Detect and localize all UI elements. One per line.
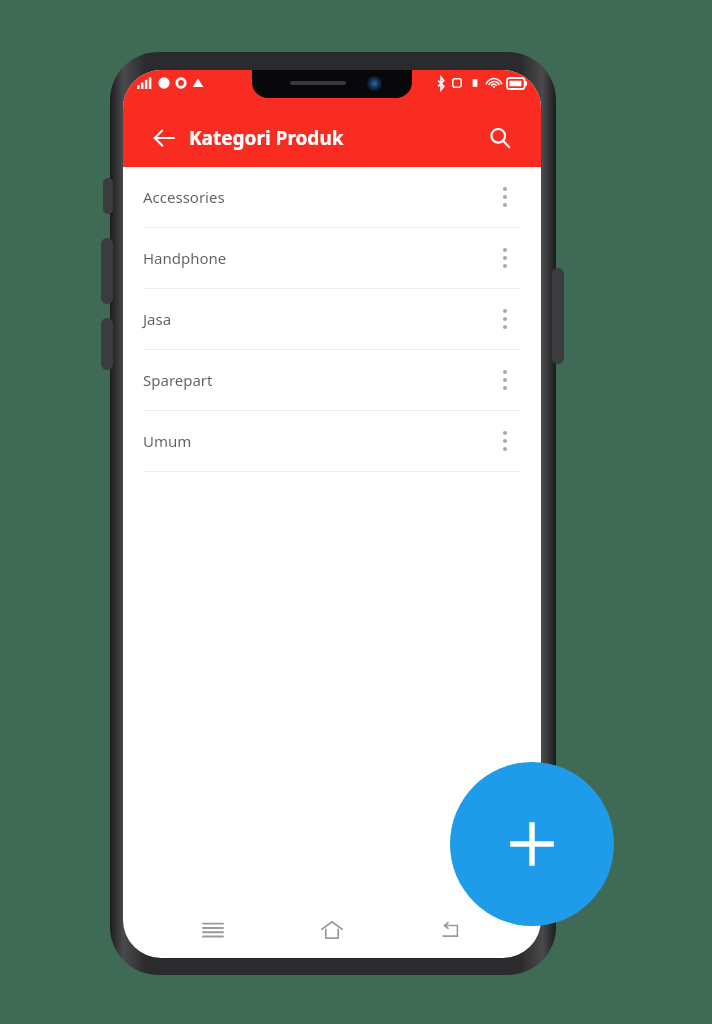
- staticText: Kategori Produk: [189, 125, 344, 151]
- button[interactable]: Add category: [450, 762, 614, 926]
- button[interactable]: Recent apps: [191, 908, 235, 952]
- other: More options for Accessories: [489, 181, 521, 213]
- button[interactable]: Search: [479, 117, 521, 159]
- staticText: Sparepart: [143, 370, 213, 390]
- staticText: Handphone: [143, 248, 227, 268]
- button[interactable]: Handphone: [123, 228, 541, 289]
- staticText: Jasa: [143, 309, 172, 329]
- button[interactable]: Sparepart: [123, 350, 541, 411]
- staticText: Umum: [143, 431, 192, 451]
- other: More options for Sparepart: [489, 364, 521, 396]
- button[interactable]: Umum: [123, 411, 541, 472]
- button[interactable]: Back: [143, 117, 185, 159]
- button[interactable]: Back: [429, 908, 473, 952]
- other: More options for Jasa: [489, 303, 521, 335]
- button[interactable]: Home: [310, 908, 354, 952]
- button[interactable]: Jasa: [123, 289, 541, 350]
- other: More options for Handphone: [489, 242, 521, 274]
- other: More options for Umum: [489, 425, 521, 457]
- staticText: Accessories: [143, 187, 225, 207]
- button[interactable]: Accessories: [123, 167, 541, 228]
